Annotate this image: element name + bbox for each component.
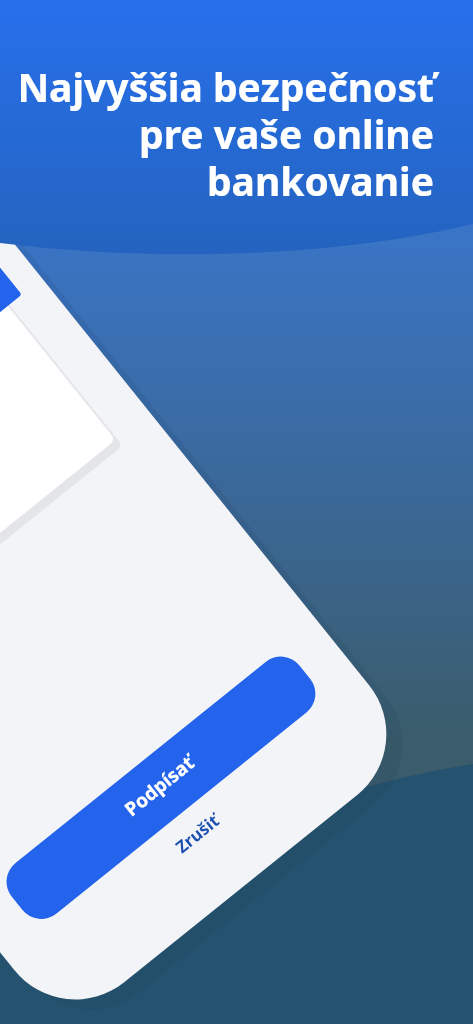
button[interactable]: Podpísať	[119, 750, 200, 822]
button[interactable]: Zrušiť	[171, 809, 224, 858]
staticText: Najvyššia bezpečnosť pre vaše online ban…	[14, 60, 434, 207]
staticText: Podpísať	[119, 750, 200, 822]
staticText: Zrušiť	[171, 809, 224, 858]
